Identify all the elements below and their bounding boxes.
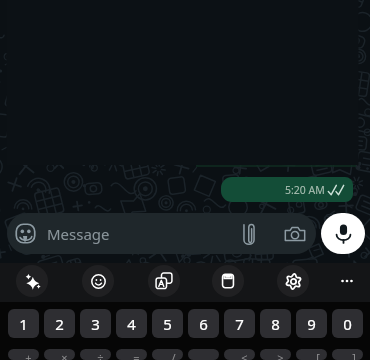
staticText: 2: [55, 314, 64, 334]
button[interactable]: Camera: [280, 219, 310, 249]
staticText: 9: [307, 314, 316, 334]
staticText: 5:20 AM: [285, 183, 325, 197]
staticText: 0: [343, 314, 352, 334]
staticText: 4: [127, 314, 136, 334]
staticText: >: [277, 350, 284, 360]
button[interactable]: Clipboard: [212, 265, 244, 297]
button[interactable]: ]: [332, 349, 363, 360]
staticText: 1: [19, 314, 28, 334]
button[interactable]: Voice message: [321, 213, 365, 254]
button[interactable]: 9: [296, 309, 327, 338]
staticText: [: [316, 350, 320, 360]
button[interactable]: 6: [188, 309, 219, 338]
staticText: =: [133, 350, 140, 360]
staticText: 8: [271, 314, 280, 334]
button[interactable]: Attach: [234, 219, 264, 249]
button[interactable]: 2: [44, 309, 75, 338]
button[interactable]: ÷: [80, 349, 111, 360]
button[interactable]: Emoji: [82, 265, 114, 297]
staticText: ]: [352, 350, 356, 360]
staticText: Message: [47, 224, 110, 244]
button[interactable]: <: [224, 349, 255, 360]
button[interactable]: 8: [260, 309, 291, 338]
button[interactable]: 0: [332, 309, 363, 338]
button[interactable]: 3: [80, 309, 111, 338]
button[interactable]: >: [260, 349, 291, 360]
button[interactable]: 5:20 AM: [221, 177, 353, 202]
staticText: 3: [91, 314, 100, 334]
button[interactable]: 4: [116, 309, 147, 338]
button[interactable]: _: [188, 349, 219, 360]
button[interactable]: /: [152, 349, 183, 360]
button[interactable]: ×: [44, 349, 75, 360]
button[interactable]: AI: [16, 265, 48, 297]
staticText: /: [171, 350, 176, 360]
button[interactable]: Message: [7, 213, 316, 254]
button[interactable]: Stickers: [148, 265, 180, 297]
button[interactable]: [: [296, 349, 327, 360]
button[interactable]: 5: [152, 309, 183, 338]
staticText: <: [241, 350, 248, 360]
button[interactable]: +: [8, 349, 39, 360]
staticText: ×: [61, 350, 68, 360]
button[interactable]: More: [331, 265, 363, 297]
button[interactable]: 1: [8, 309, 39, 338]
button[interactable]: 7: [224, 309, 255, 338]
staticText: 7: [235, 314, 244, 334]
staticText: 5: [163, 314, 172, 334]
button[interactable]: Settings: [277, 265, 309, 297]
button[interactable]: =: [116, 349, 147, 360]
staticText: +: [25, 350, 32, 360]
staticText: ÷: [97, 350, 104, 360]
staticText: 6: [199, 314, 208, 334]
